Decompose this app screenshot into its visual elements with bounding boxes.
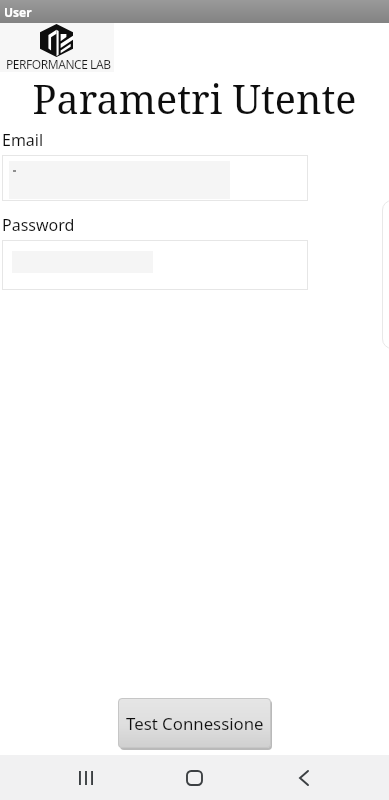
button[interactable] [2,155,308,201]
button[interactable]: Home [158,755,230,800]
button[interactable] [2,240,308,290]
staticText: Test Connessione [126,712,264,735]
button[interactable]: Recent apps [50,755,122,800]
staticText: Parametri Utente [0,72,389,126]
staticText: User [4,4,32,20]
button[interactable]: Back [268,755,340,800]
staticText: Email [2,129,44,151]
button[interactable]: Test Connessione [118,698,271,748]
staticText: PERFORMANCE LAB [6,56,118,72]
staticText: Password [2,214,75,236]
